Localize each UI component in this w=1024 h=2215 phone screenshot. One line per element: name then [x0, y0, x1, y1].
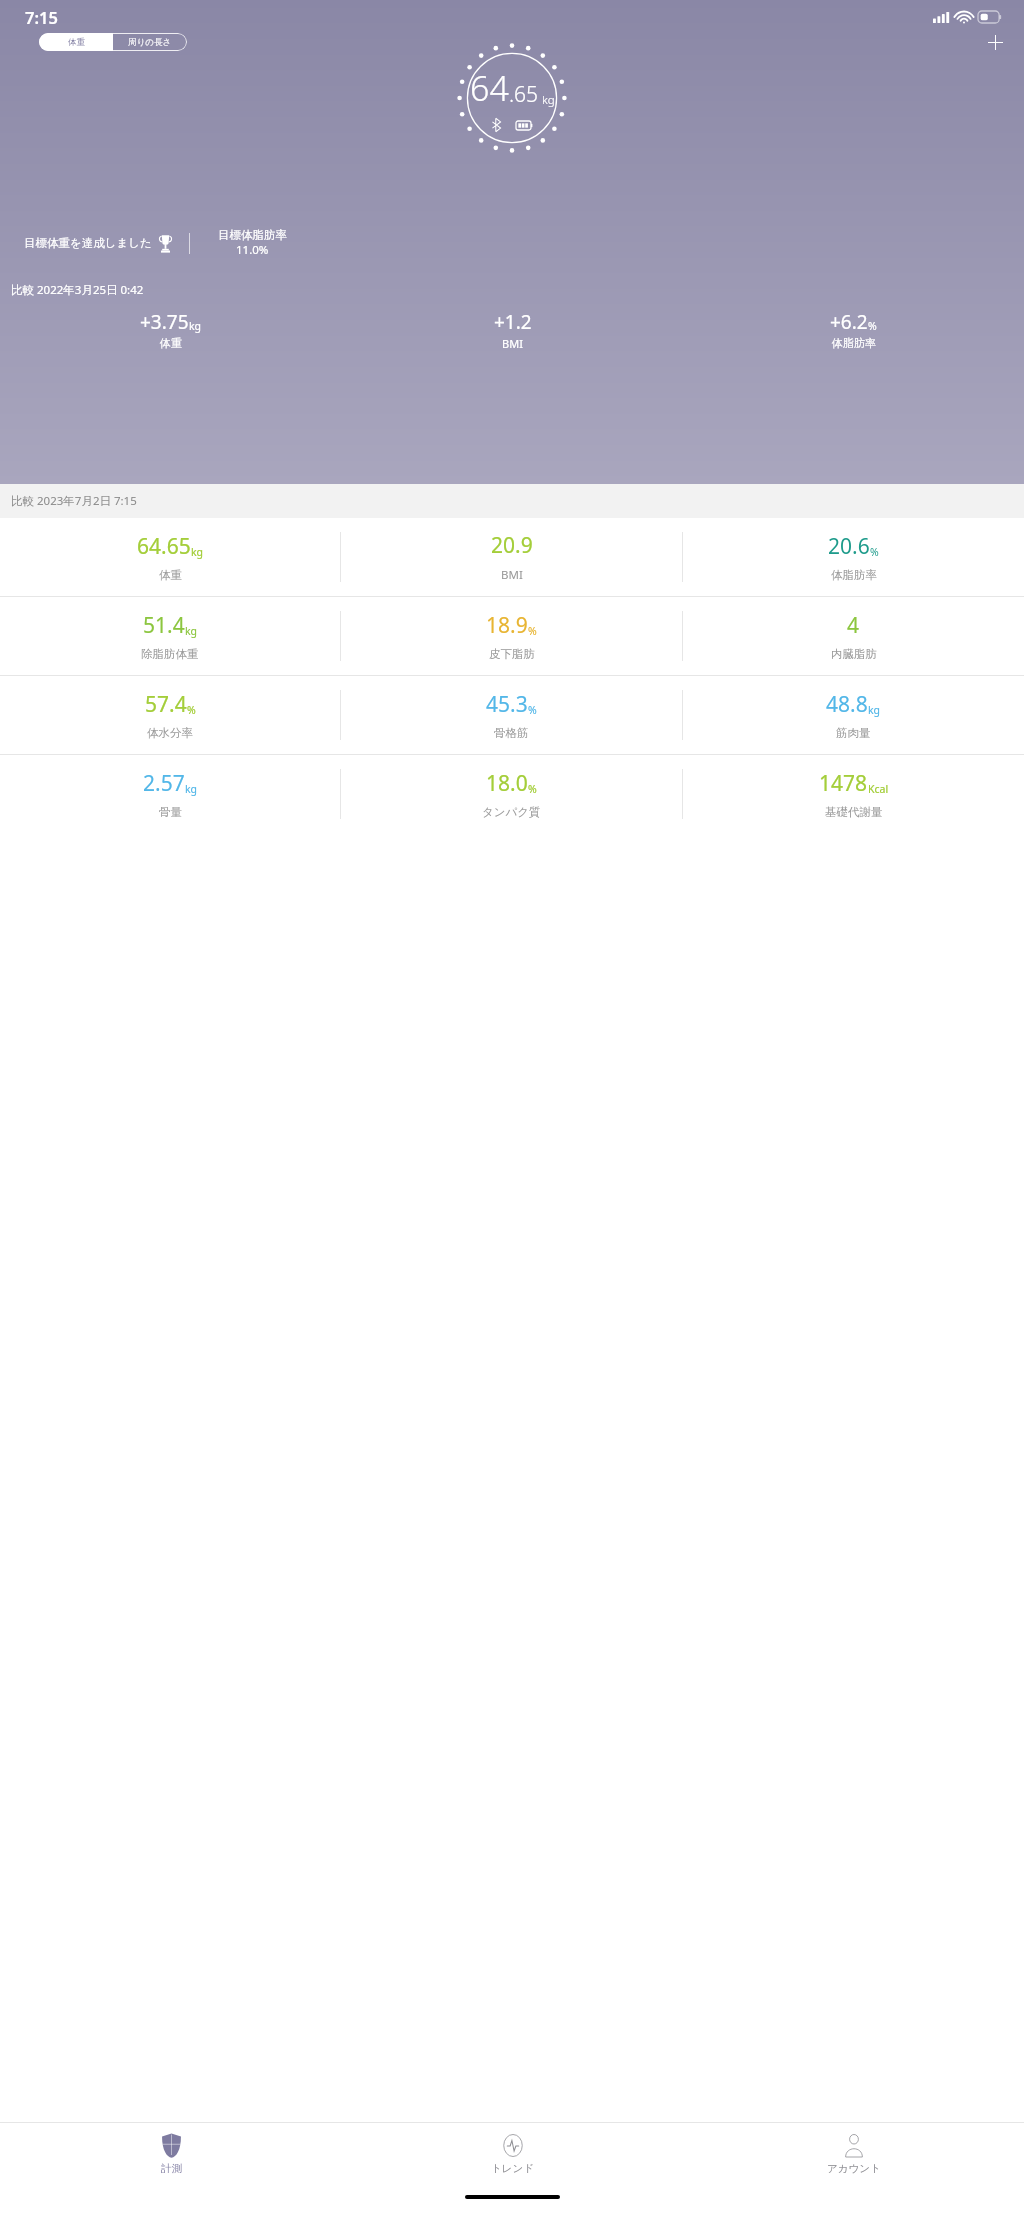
- button[interactable]: Add: [980, 27, 1010, 57]
- staticText: 11.0%: [236, 242, 269, 258]
- button[interactable]: 45.3: [341, 676, 682, 754]
- staticText: +1.2: [494, 309, 532, 335]
- staticText: 骨量: [159, 805, 182, 819]
- staticText: %: [528, 624, 537, 638]
- button[interactable]: 計測: [0, 2123, 342, 2185]
- staticText: 体脂肪率: [831, 568, 877, 582]
- staticText: 比較 2023年7月2日 7:15: [11, 493, 137, 509]
- staticText: 51.4: [143, 611, 185, 640]
- staticText: 4: [847, 611, 860, 640]
- staticText: アカウント: [827, 2162, 881, 2175]
- staticText: 除脂肪体重: [141, 647, 199, 661]
- staticText: トレンド: [491, 2162, 534, 2175]
- staticText: BMI: [501, 567, 523, 583]
- staticText: +6.2: [830, 309, 868, 335]
- staticText: 体重: [159, 568, 182, 582]
- staticText: kg: [868, 703, 881, 717]
- staticText: kg: [185, 624, 198, 638]
- staticText: 64: [470, 65, 509, 111]
- staticText: %: [868, 319, 877, 333]
- staticText: 57.4: [145, 690, 187, 719]
- button[interactable]: 20.9: [341, 518, 682, 596]
- staticText: 計測: [161, 2162, 182, 2175]
- staticText: 20.9: [491, 531, 533, 560]
- staticText: 48.8: [826, 690, 868, 719]
- staticText: %: [528, 703, 537, 717]
- button[interactable]: 48.8: [683, 676, 1024, 754]
- staticText: 18.0: [486, 769, 528, 798]
- button[interactable]: 周りの長さ: [113, 33, 187, 51]
- staticText: kg: [189, 319, 202, 333]
- staticText: .65: [509, 80, 539, 109]
- staticText: 2.57: [143, 769, 185, 798]
- button[interactable]: 64.65: [0, 518, 340, 596]
- staticText: kg: [191, 545, 204, 559]
- staticText: 18.9: [486, 611, 528, 640]
- button[interactable]: 1478: [683, 755, 1024, 833]
- staticText: Kcal: [868, 782, 889, 796]
- staticText: 64.65: [137, 532, 191, 561]
- staticText: 基礎代謝量: [825, 805, 883, 819]
- staticText: BMI: [502, 336, 523, 351]
- staticText: %: [870, 545, 879, 559]
- staticText: 皮下脂肪: [489, 647, 535, 661]
- staticText: %: [528, 782, 537, 796]
- staticText: 7:15: [25, 6, 58, 28]
- staticText: 目標体脂肪率: [218, 228, 287, 242]
- button[interactable]: アカウント: [683, 2123, 1024, 2185]
- staticText: 45.3: [486, 690, 528, 719]
- staticText: 体脂肪率: [832, 336, 876, 350]
- staticText: 体水分率: [147, 726, 193, 740]
- button[interactable]: 2.57: [0, 755, 340, 833]
- staticText: 内臓脂肪: [831, 647, 877, 661]
- staticText: 比較 2022年3月25日 0:42: [11, 282, 144, 298]
- staticText: 目標体重を達成しました: [24, 236, 152, 250]
- staticText: %: [187, 703, 196, 717]
- staticText: 1478: [819, 769, 868, 798]
- staticText: 骨格筋: [494, 726, 529, 740]
- staticText: kg: [185, 782, 198, 796]
- button[interactable]: 20.6: [683, 518, 1024, 596]
- button[interactable]: 51.4: [0, 597, 340, 675]
- button[interactable]: 18.0: [341, 755, 682, 833]
- staticText: タンパク質: [482, 805, 541, 819]
- staticText: 周りの長さ: [128, 37, 172, 48]
- button[interactable]: 体重: [39, 33, 113, 51]
- button[interactable]: 4: [683, 597, 1024, 675]
- staticText: +3.75: [140, 309, 189, 335]
- button[interactable]: 57.4: [0, 676, 340, 754]
- staticText: 体重: [68, 37, 85, 48]
- staticText: 体重: [160, 336, 182, 350]
- staticText: 20.6: [828, 532, 870, 561]
- button[interactable]: トレンド: [342, 2123, 683, 2185]
- button[interactable]: 18.9: [341, 597, 682, 675]
- staticText: 筋肉量: [836, 726, 871, 740]
- staticText: kg: [542, 92, 555, 108]
